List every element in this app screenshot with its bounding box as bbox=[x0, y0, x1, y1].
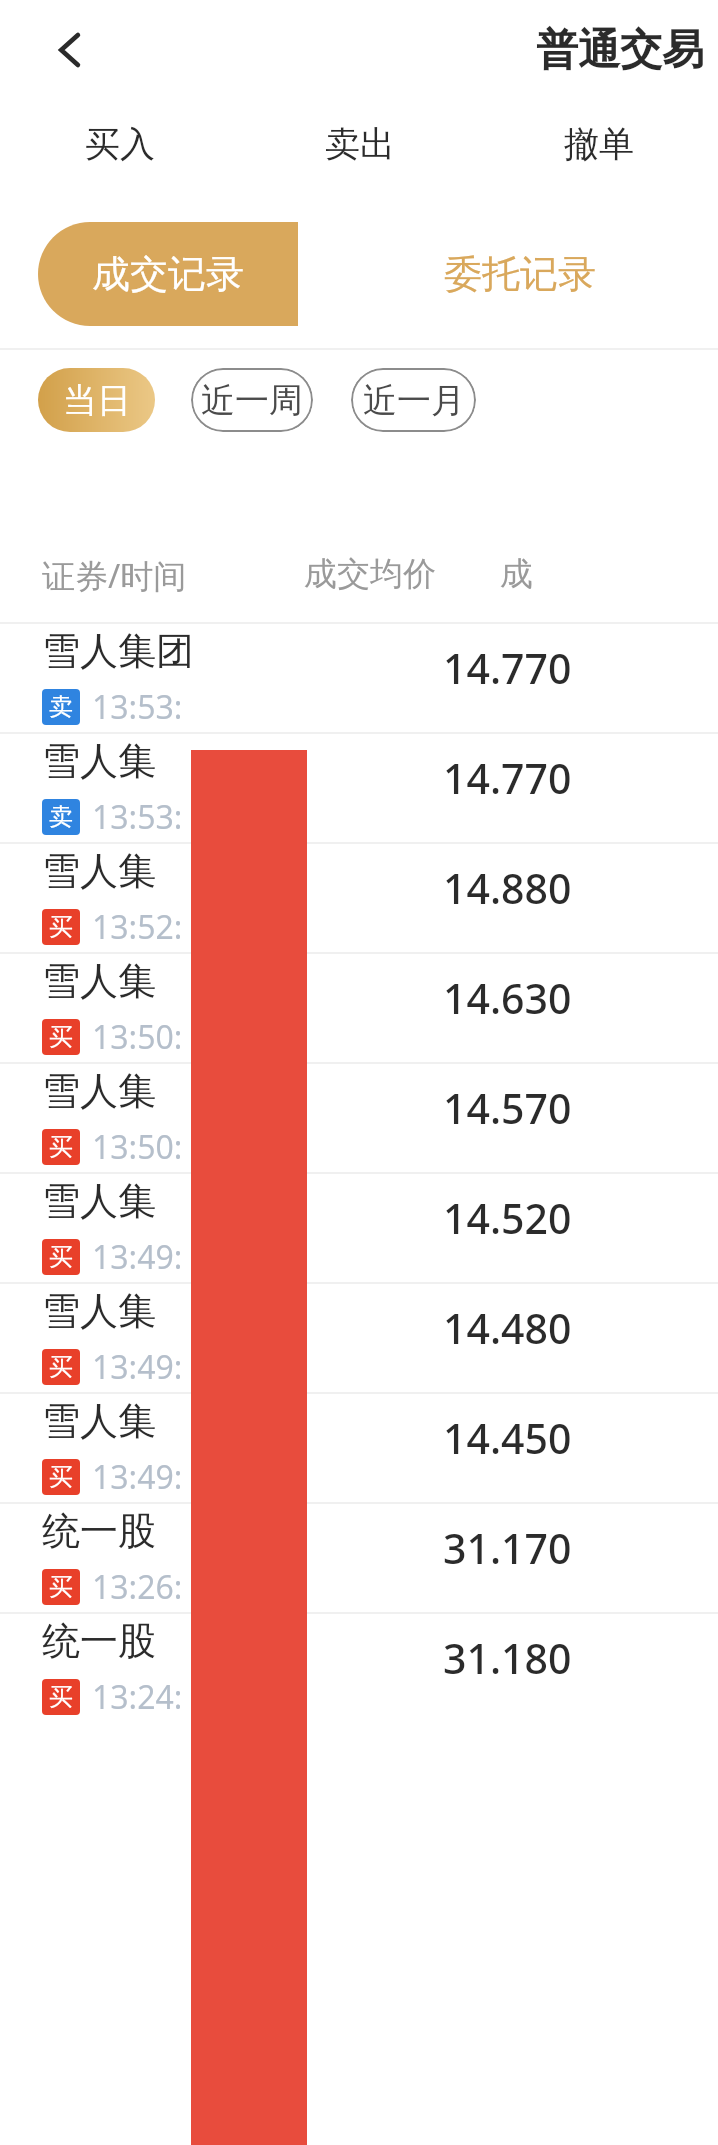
staticText: 13:49: bbox=[92, 1345, 183, 1389]
staticText: 13:52: bbox=[92, 905, 183, 949]
button[interactable]: 雪人集 bbox=[0, 1174, 718, 1282]
staticText: 卖出 bbox=[325, 122, 395, 166]
staticText: 13:53: bbox=[92, 685, 183, 729]
button[interactable]: 卖出 bbox=[240, 100, 479, 188]
staticText: 14.570 bbox=[443, 1080, 572, 1136]
staticText: 13:50: bbox=[92, 1125, 183, 1169]
button[interactable]: 雪人集 bbox=[0, 1064, 718, 1172]
staticText: 近一月 bbox=[363, 379, 465, 422]
button[interactable]: 委托记录 bbox=[298, 222, 718, 326]
staticText: 卖 bbox=[49, 802, 73, 832]
staticText: 雪人集 bbox=[42, 1067, 156, 1115]
button[interactable]: 雪人集团 bbox=[0, 624, 718, 732]
staticText: 雪人集 bbox=[42, 737, 156, 785]
staticText: 买 bbox=[49, 1242, 73, 1272]
staticText: 13:49: bbox=[92, 1455, 183, 1499]
staticText: 证券/时间 bbox=[42, 553, 304, 598]
staticText: 统一股 bbox=[42, 1617, 156, 1665]
staticText: 买 bbox=[49, 1682, 73, 1712]
staticText: 买 bbox=[49, 912, 73, 942]
staticText: 买 bbox=[49, 1022, 73, 1052]
staticText: 买入 bbox=[85, 122, 155, 166]
button[interactable]: 近一月 bbox=[351, 368, 476, 432]
staticText: 雪人集 bbox=[42, 1287, 156, 1335]
button[interactable]: 统一股 bbox=[0, 1504, 718, 1612]
staticText: 14.630 bbox=[443, 970, 572, 1026]
staticText: 14.520 bbox=[443, 1190, 572, 1246]
button[interactable]: 撤单 bbox=[479, 100, 718, 188]
staticText: 成交均价 bbox=[304, 553, 500, 595]
button[interactable]: 雪人集 bbox=[0, 1394, 718, 1502]
button[interactable]: 当日 bbox=[38, 368, 155, 432]
staticText: 31.170 bbox=[443, 1520, 572, 1576]
button[interactable]: 成交记录 bbox=[38, 222, 298, 326]
staticText: 成交记录 bbox=[92, 250, 244, 298]
button[interactable]: 统一股 bbox=[0, 1614, 718, 1722]
staticText: 撤单 bbox=[564, 122, 634, 166]
staticText: 买 bbox=[49, 1462, 73, 1492]
staticText: 雪人集 bbox=[42, 957, 156, 1005]
staticText: 近一周 bbox=[201, 379, 303, 422]
staticText: 卖 bbox=[49, 692, 73, 722]
button[interactable]: 雪人集 bbox=[0, 954, 718, 1062]
staticText: 14.880 bbox=[443, 860, 572, 916]
button[interactable]: 雪人集 bbox=[0, 734, 718, 842]
staticText: 成 bbox=[500, 553, 533, 595]
staticText: 买 bbox=[49, 1132, 73, 1162]
staticText: 当日 bbox=[63, 379, 131, 422]
button[interactable]: 近一周 bbox=[191, 368, 313, 432]
staticText: 13:24: bbox=[92, 1675, 183, 1719]
button[interactable]: 雪人集 bbox=[0, 844, 718, 952]
button[interactable]: 雪人集 bbox=[0, 1284, 718, 1392]
staticText: 买 bbox=[49, 1572, 73, 1602]
staticText: 雪人集 bbox=[42, 1397, 156, 1445]
staticText: 13:50: bbox=[92, 1015, 183, 1059]
button[interactable]: 买入 bbox=[0, 100, 240, 188]
staticText: 统一股 bbox=[42, 1507, 156, 1555]
staticText: 14.770 bbox=[443, 750, 572, 806]
staticText: 买 bbox=[49, 1352, 73, 1382]
staticText: 14.480 bbox=[443, 1300, 572, 1356]
staticText: 13:26: bbox=[92, 1565, 183, 1609]
staticText: 31.180 bbox=[443, 1630, 572, 1686]
button[interactable]: Back bbox=[38, 18, 102, 82]
staticText: 13:49: bbox=[92, 1235, 183, 1279]
staticText: 雪人集 bbox=[42, 847, 156, 895]
staticText: 普通交易 bbox=[536, 24, 704, 77]
staticText: 13:53: bbox=[92, 795, 183, 839]
staticText: 14.450 bbox=[443, 1410, 572, 1466]
staticText: 雪人集团 bbox=[42, 627, 194, 675]
staticText: 委托记录 bbox=[444, 250, 596, 298]
staticText: 雪人集 bbox=[42, 1177, 156, 1225]
staticText: 14.770 bbox=[443, 640, 572, 696]
